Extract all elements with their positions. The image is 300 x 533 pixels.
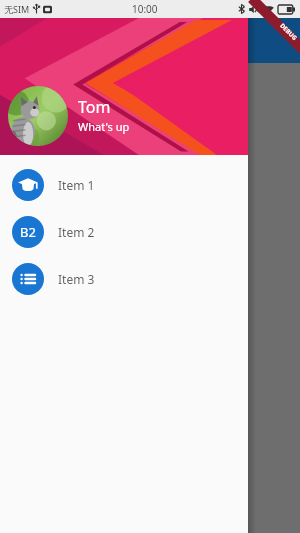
staticText: B2 bbox=[20, 223, 36, 241]
staticText: Item 2 bbox=[58, 224, 95, 240]
button[interactable]: Item 3 bbox=[0, 255, 248, 302]
staticText: Tom bbox=[78, 96, 111, 118]
staticText: Item 1 bbox=[58, 177, 95, 193]
staticText: DEBUG bbox=[278, 22, 299, 42]
staticText: 无SIM bbox=[4, 3, 30, 15]
staticText: 10:00 bbox=[132, 2, 158, 16]
staticText: Item 3 bbox=[58, 271, 95, 287]
button[interactable]: Item 1 bbox=[0, 161, 248, 208]
staticText: What's up bbox=[78, 119, 130, 134]
button[interactable]: B2 bbox=[0, 208, 248, 255]
